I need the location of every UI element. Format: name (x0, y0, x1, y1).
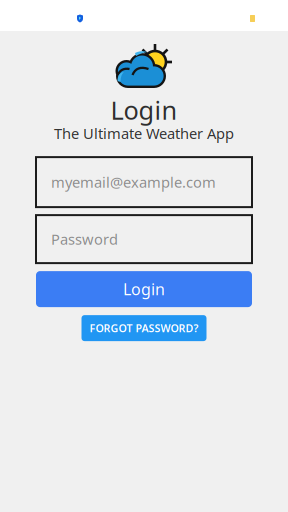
staticText: Login (110, 93, 177, 127)
button[interactable]: Password (36, 215, 252, 263)
button[interactable]: myemail@example.com (36, 157, 252, 207)
staticText: Password (51, 229, 118, 249)
button[interactable]: FORGOT PASSWORD? (81, 315, 206, 341)
staticText: Login (123, 278, 165, 300)
staticText: myemail@example.com (51, 172, 216, 192)
staticText: FORGOT PASSWORD? (89, 321, 198, 335)
button[interactable]: Login (36, 271, 252, 307)
staticText: The Ultimate Weather App (54, 124, 234, 143)
